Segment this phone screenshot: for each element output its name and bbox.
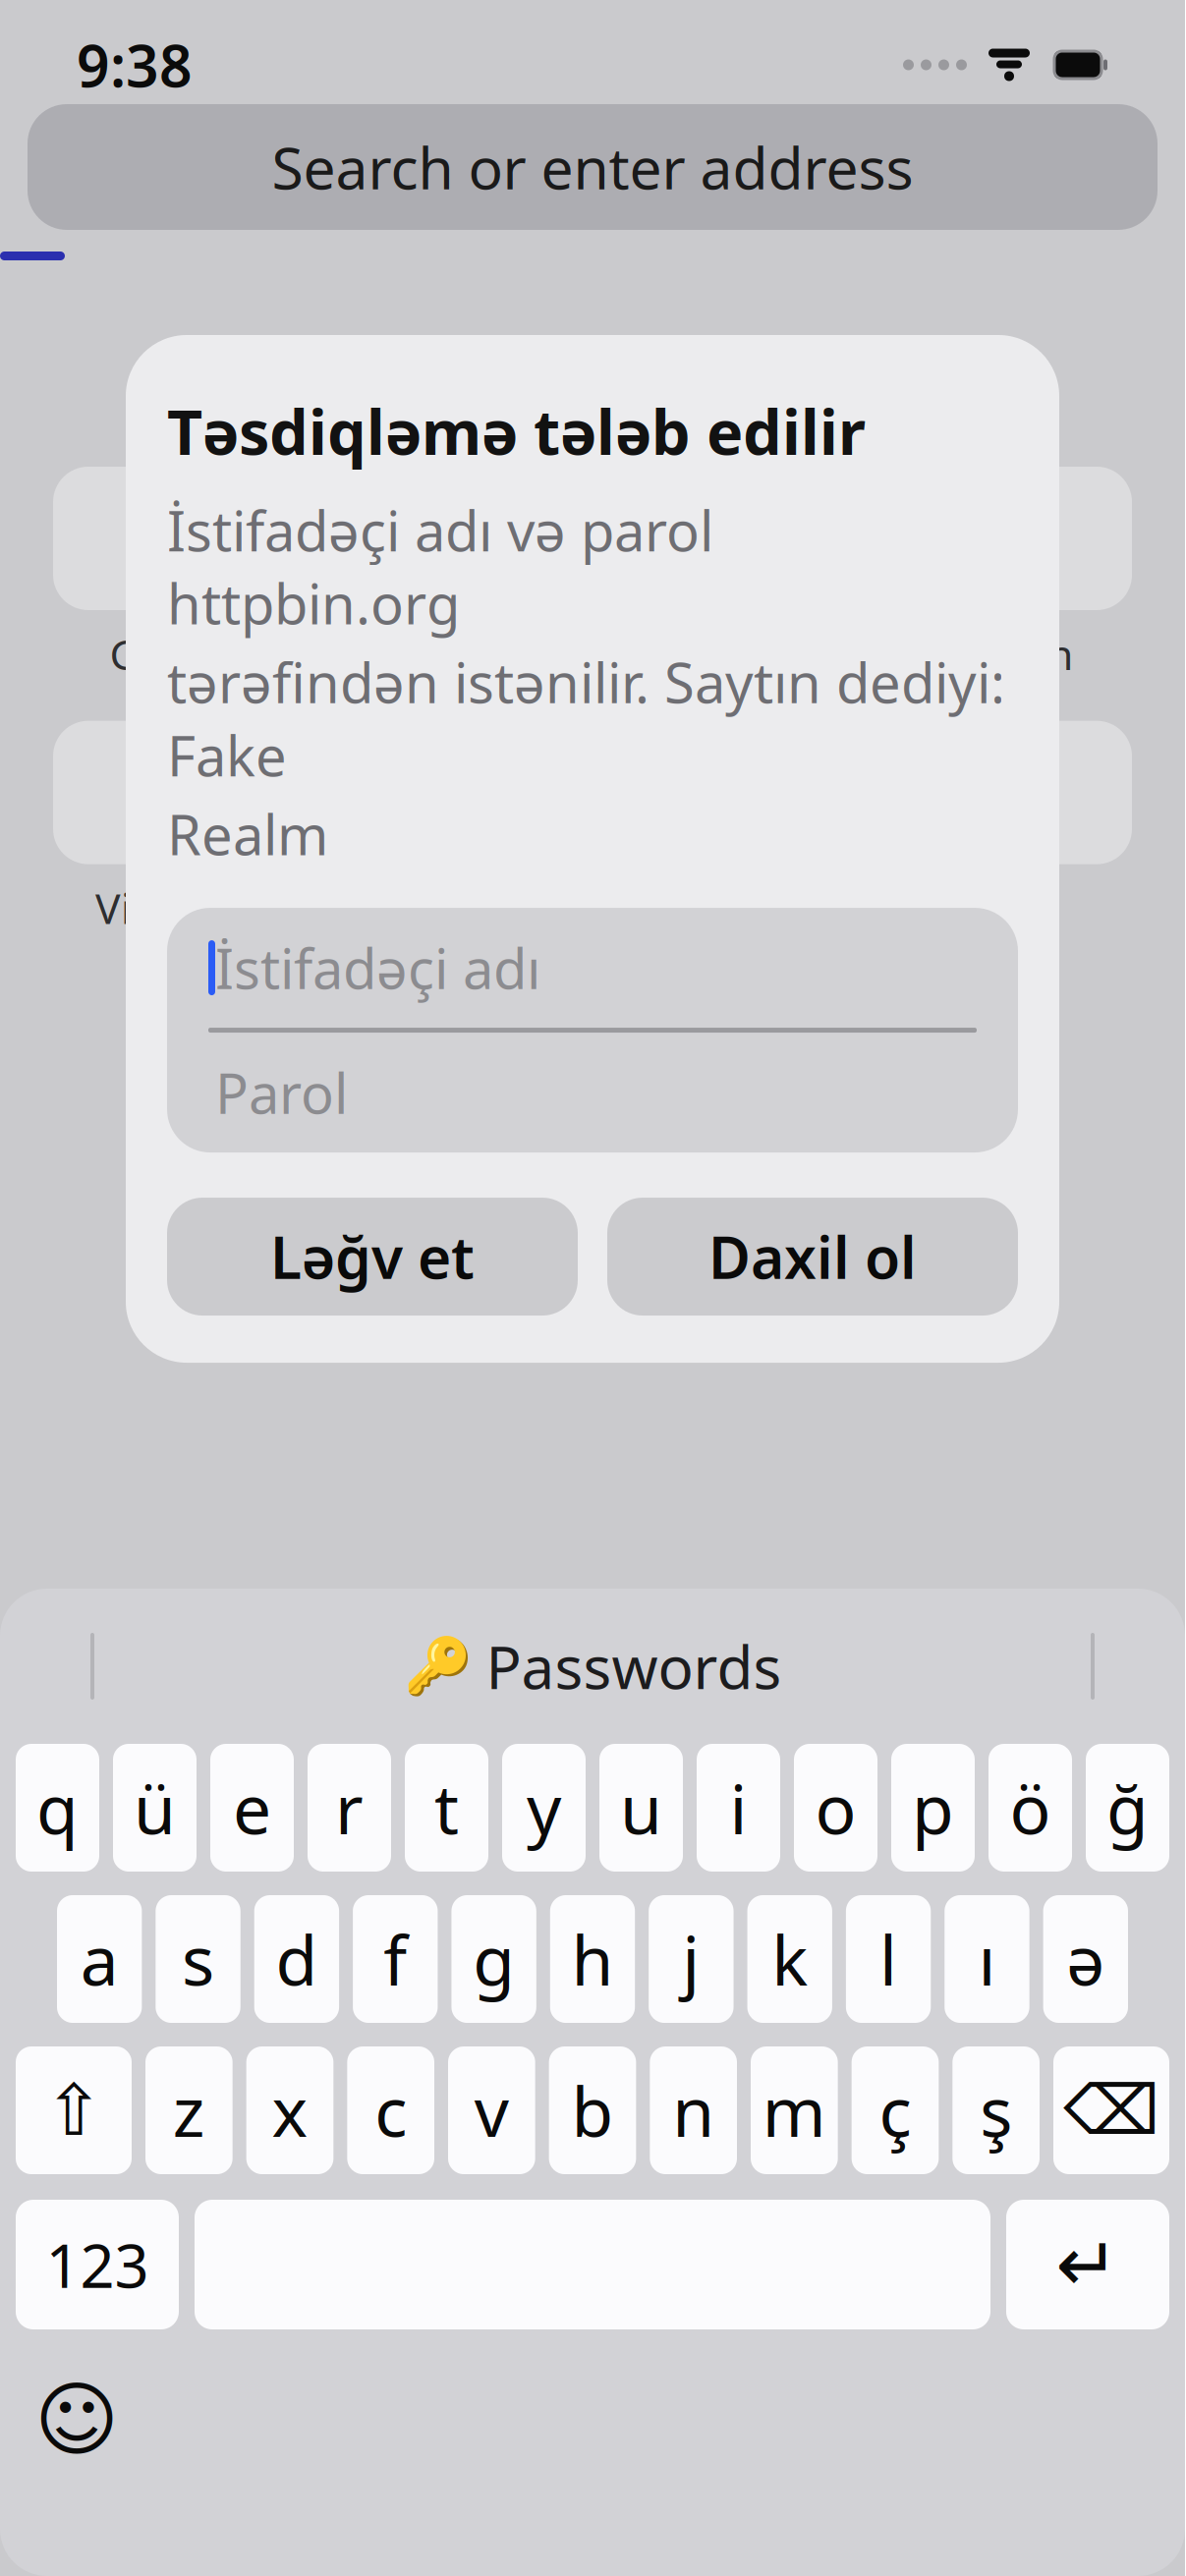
button[interactable]: 123 <box>16 2200 179 2329</box>
staticText: p <box>912 1763 954 1853</box>
button[interactable]: r <box>308 1744 391 1872</box>
staticText: m <box>762 2065 826 2156</box>
button[interactable]: 🔑 <box>380 1628 805 1705</box>
button[interactable]: x <box>246 2046 333 2174</box>
button[interactable]: ü <box>113 1744 197 1872</box>
staticText: ↵ <box>1056 2221 1120 2308</box>
button[interactable]: a <box>57 1895 142 2023</box>
staticText: ç <box>879 2065 911 2156</box>
staticText: q <box>36 1763 79 1853</box>
staticText: z <box>173 2065 205 2156</box>
staticText: h <box>571 1914 614 2004</box>
staticText: o <box>815 1763 856 1853</box>
button[interactable]: p <box>891 1744 975 1872</box>
staticText: Search or enter address <box>272 129 913 205</box>
staticText: l <box>880 1914 897 2004</box>
button[interactable]: g <box>452 1895 536 2023</box>
staticText: x <box>272 2065 308 2156</box>
button[interactable]: ı <box>945 1895 1029 2023</box>
button[interactable]: Password field <box>167 1033 1018 1152</box>
button[interactable]: ö <box>988 1744 1072 1872</box>
button[interactable]: d <box>254 1895 339 2023</box>
button[interactable]: l <box>846 1895 931 2023</box>
button[interactable]: h <box>550 1895 635 2023</box>
staticText: v <box>474 2065 509 2156</box>
staticText: Təsdiqləmə tələb edilir <box>167 390 866 472</box>
staticText: ö <box>1010 1763 1051 1853</box>
staticText: G <box>110 626 140 682</box>
staticText: 🔑 <box>403 1635 472 1698</box>
button[interactable]: o <box>794 1744 877 1872</box>
button[interactable]: q <box>16 1744 99 1872</box>
staticText: İstifadəçi adı və parol httpbin.org <box>167 493 713 639</box>
staticText: g <box>473 1914 515 2004</box>
button[interactable]: v <box>448 2046 535 2174</box>
button[interactable]: ç <box>852 2046 939 2174</box>
staticText: ğ <box>1106 1763 1149 1853</box>
staticText: ə <box>1066 1914 1105 2004</box>
button[interactable]: Ləğv et <box>167 1198 578 1316</box>
button[interactable]: e <box>210 1744 294 1872</box>
button[interactable]: s <box>156 1895 241 2023</box>
button[interactable]: Search or enter address <box>28 104 1158 230</box>
button[interactable]: u <box>599 1744 683 1872</box>
staticText: j <box>682 1914 700 2004</box>
staticText: r <box>335 1763 364 1853</box>
staticText: ⌫ <box>1063 2072 1159 2149</box>
staticText: e <box>233 1763 271 1853</box>
button[interactable]: ş <box>952 2046 1040 2174</box>
button[interactable]: z <box>145 2046 233 2174</box>
button[interactable]: n <box>650 2046 737 2174</box>
staticText: k <box>772 1914 808 2004</box>
staticText: ı <box>978 1914 996 2004</box>
button[interactable]: Shift <box>16 2046 132 2174</box>
button[interactable]: Return <box>1006 2200 1169 2329</box>
staticText: y <box>527 1763 561 1853</box>
staticText: ü <box>134 1763 176 1853</box>
staticText: n <box>1047 626 1073 682</box>
staticText: tərəfindən istənilir. Saytın dediyi: Fak… <box>167 645 1005 792</box>
staticText: Ləğv et <box>270 1218 475 1295</box>
staticText: u <box>620 1763 662 1853</box>
button[interactable]: y <box>502 1744 586 1872</box>
staticText: t <box>434 1763 459 1853</box>
button[interactable]: t <box>405 1744 488 1872</box>
staticText: 9:38 <box>77 27 193 103</box>
button[interactable]: i <box>697 1744 780 1872</box>
staticText: Vik <box>95 880 154 936</box>
staticText: d <box>276 1914 318 2004</box>
staticText: b <box>571 2065 614 2156</box>
staticText: n <box>672 2065 715 2156</box>
button[interactable]: Username field <box>167 908 1018 1028</box>
button[interactable]: b <box>549 2046 636 2174</box>
staticText: Realm <box>167 797 328 871</box>
staticText: Daxil ol <box>708 1218 917 1295</box>
staticText: f <box>384 1914 407 2004</box>
staticText: a <box>80 1914 119 2004</box>
button[interactable]: Daxil ol <box>607 1198 1018 1316</box>
staticText: s <box>182 1914 214 2004</box>
staticText: i <box>730 1763 747 1853</box>
staticText: Parol <box>215 1056 348 1129</box>
button[interactable]: j <box>649 1895 734 2023</box>
button[interactable]: k <box>747 1895 832 2023</box>
button[interactable]: c <box>347 2046 434 2174</box>
staticText: Passwords <box>486 1627 782 1705</box>
staticText: İstifadəçi adı <box>215 931 540 1004</box>
staticText: 123 <box>46 2225 149 2305</box>
button[interactable]: m <box>751 2046 838 2174</box>
button[interactable]: Delete <box>1053 2046 1169 2174</box>
button[interactable]: ğ <box>1086 1744 1169 1872</box>
staticText: c <box>375 2065 407 2156</box>
button[interactable]: Emoji keyboard <box>29 2373 124 2467</box>
staticText: ⇧ <box>44 2070 103 2150</box>
button[interactable]: f <box>353 1895 438 2023</box>
staticText: ş <box>980 2065 1012 2156</box>
staticText: ☺ <box>34 2374 119 2466</box>
button[interactable]: ə <box>1043 1895 1128 2023</box>
